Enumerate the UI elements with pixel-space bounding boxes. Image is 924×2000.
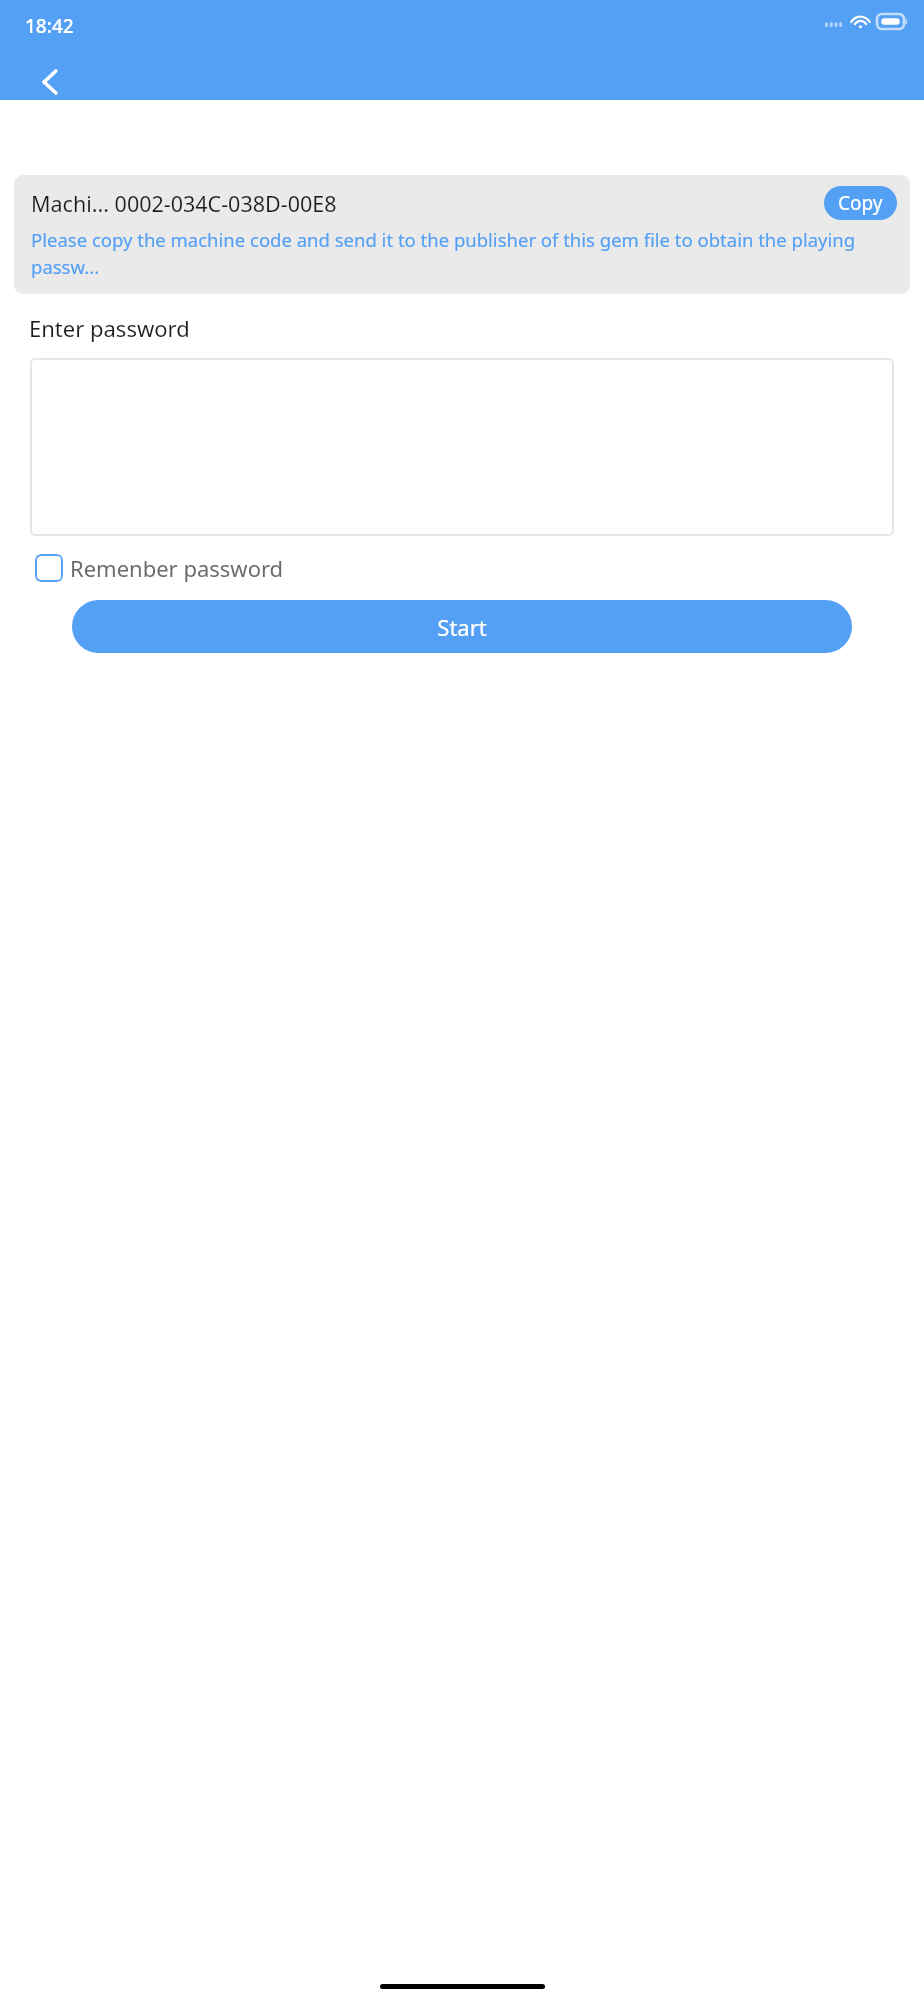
button[interactable]: Remenber password <box>35 553 284 583</box>
staticText: Enter password <box>29 313 190 343</box>
staticText: Please copy the machine code and send it… <box>31 227 900 280</box>
staticText: Copy <box>838 190 883 216</box>
button[interactable]: Start <box>72 600 852 653</box>
button[interactable]: Back <box>22 54 78 110</box>
staticText: 18:42 <box>25 13 74 39</box>
button[interactable]: Copy <box>824 186 897 220</box>
staticText: Remenber password <box>70 553 284 583</box>
button[interactable] <box>30 358 894 536</box>
staticText: Start <box>437 612 487 642</box>
staticText: Machi... 0002-034C-038D-00E8 <box>31 189 337 218</box>
